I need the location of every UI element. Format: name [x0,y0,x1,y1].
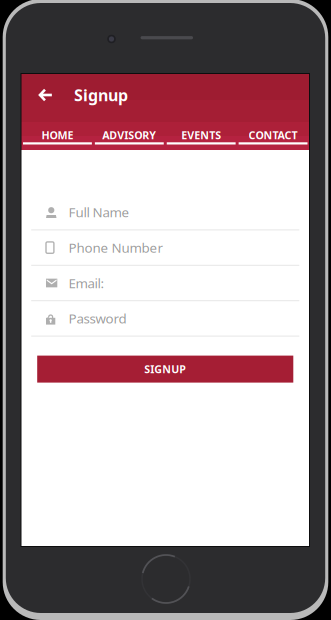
staticText: EVENTS [181,128,221,142]
button[interactable]: Back [26,75,64,115]
staticText: SIGNUP [144,362,186,376]
staticText: CONTACT [249,128,298,142]
staticText: Email: [68,274,104,292]
staticText: Signup [74,84,128,106]
staticText: ADVISORY [102,128,156,142]
button[interactable]: SIGNUP [37,356,293,383]
staticText: Full Name [68,203,129,221]
button[interactable]: EVENTS [165,120,237,150]
staticText: HOME [41,128,73,142]
button[interactable]: HOME [21,120,93,150]
button[interactable]: CONTACT [237,120,309,150]
staticText: Phone Number [68,239,163,256]
button[interactable]: ADVISORY [93,120,165,150]
staticText: Password [68,309,126,327]
